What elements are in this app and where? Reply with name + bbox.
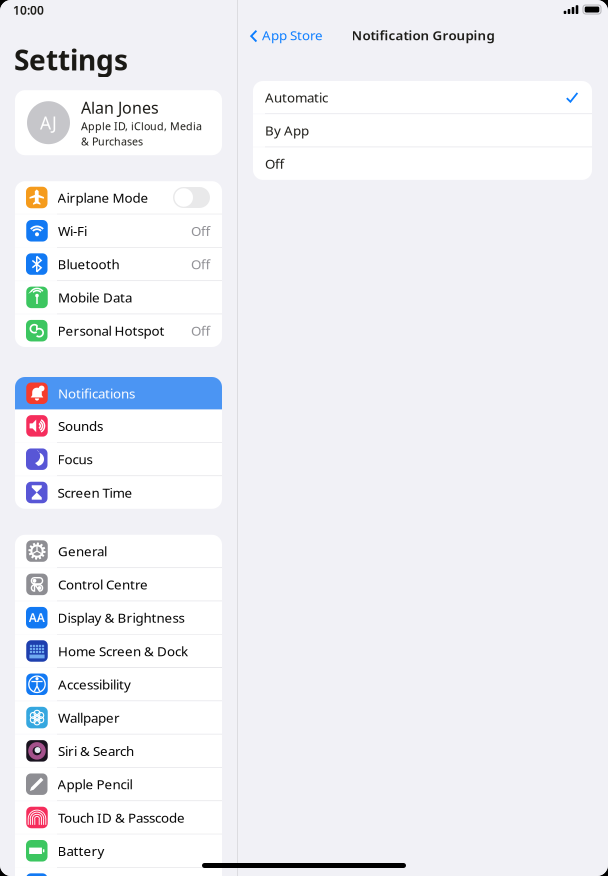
- button[interactable]: Wi-Fi: [15, 214, 222, 247]
- staticText: Screen Time: [57, 484, 132, 501]
- staticText: Accessibility: [58, 675, 131, 693]
- staticText: Off: [191, 222, 210, 240]
- staticText: Wi-Fi: [58, 222, 87, 240]
- button[interactable]: Automatic: [253, 81, 592, 113]
- button[interactable]: Battery: [15, 834, 222, 867]
- staticText: Control Centre: [58, 575, 148, 593]
- button[interactable]: Apple Pencil: [15, 768, 222, 800]
- button[interactable]: Accessibility: [15, 668, 222, 701]
- staticText: Notifications: [58, 384, 135, 402]
- staticText: Alan Jones: [81, 97, 159, 118]
- staticText: AA: [29, 610, 45, 626]
- staticText: Airplane Mode: [57, 189, 148, 206]
- button[interactable]: Screen Time: [15, 476, 222, 509]
- staticText: Apple ID, iCloud, Media: [81, 119, 202, 133]
- staticText: General: [58, 542, 107, 560]
- button[interactable]: General: [15, 535, 222, 567]
- button[interactable]: Privacy: [15, 868, 222, 876]
- staticText: Sounds: [58, 417, 103, 435]
- staticText: App Store: [262, 26, 323, 44]
- button[interactable]: AJ: [15, 90, 222, 155]
- staticText: & Purchases: [81, 134, 143, 148]
- button[interactable]: Notifications: [15, 377, 222, 410]
- button[interactable]: Siri & Search: [15, 735, 222, 767]
- staticText: Settings: [14, 41, 128, 78]
- button[interactable]: AA: [15, 601, 222, 634]
- staticText: Siri & Search: [58, 742, 134, 760]
- button[interactable]: Touch ID & Passcode: [15, 801, 222, 834]
- staticText: By App: [265, 122, 309, 139]
- button[interactable]: By App: [253, 114, 592, 147]
- staticText: Battery: [57, 842, 104, 860]
- button[interactable]: Mobile Data: [15, 281, 222, 314]
- button[interactable]: Home Screen & Dock: [15, 635, 222, 667]
- button[interactable]: Personal Hotspot: [15, 314, 222, 347]
- staticText: 10:00: [13, 2, 44, 18]
- staticText: Bluetooth: [57, 255, 119, 273]
- button[interactable]: Focus: [15, 443, 222, 475]
- staticText: AJ: [40, 111, 57, 134]
- button[interactable]: Sounds: [15, 410, 222, 442]
- staticText: Automatic: [265, 88, 328, 106]
- button[interactable]: Airplane Mode: [15, 181, 222, 214]
- button[interactable]: App Store: [238, 20, 329, 50]
- staticText: Apple Pencil: [57, 775, 132, 793]
- button[interactable]: Wallpaper: [15, 701, 222, 734]
- button[interactable]: Bluetooth: [15, 248, 222, 280]
- staticText: Home Screen & Dock: [58, 642, 188, 660]
- staticText: Wallpaper: [58, 709, 120, 726]
- button[interactable]: Off: [253, 147, 592, 180]
- staticText: Off: [265, 155, 284, 172]
- staticText: Notification Grouping: [351, 26, 494, 44]
- staticText: Touch ID & Passcode: [58, 809, 185, 826]
- staticText: Mobile Data: [58, 288, 132, 306]
- button[interactable]: Control Centre: [15, 568, 222, 601]
- staticText: Focus: [57, 450, 92, 468]
- staticText: Off: [191, 255, 210, 273]
- staticText: Personal Hotspot: [57, 322, 164, 339]
- staticText: Off: [191, 322, 210, 339]
- staticText: Display & Brightness: [57, 609, 184, 626]
